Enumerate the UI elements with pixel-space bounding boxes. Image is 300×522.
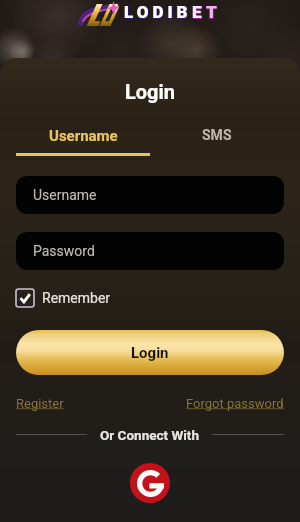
- staticText: Password: [33, 243, 95, 259]
- staticText: Username: [49, 127, 118, 143]
- staticText: Login: [131, 344, 169, 362]
- button[interactable]: SMS: [150, 127, 284, 143]
- button[interactable]: Remember: [16, 288, 111, 307]
- staticText: Username: [33, 187, 97, 203]
- button[interactable]: Forgot password: [186, 396, 284, 411]
- staticText: LODIB: [125, 2, 193, 22]
- staticText: SMS: [202, 127, 232, 143]
- button[interactable]: Sign in with Google: [130, 463, 170, 503]
- staticText: LODIB: [125, 3, 193, 23]
- staticText: ET: [192, 3, 221, 23]
- staticText: LODIB: [124, 2, 192, 22]
- staticText: ET: [193, 2, 222, 22]
- staticText: Or Connect With: [100, 427, 199, 441]
- staticText: LODIB: [124, 3, 192, 23]
- staticText: Remember: [42, 290, 111, 306]
- staticText: Login: [125, 80, 176, 103]
- button[interactable]: Register: [16, 396, 64, 411]
- staticText: E: [192, 2, 206, 22]
- staticText: T: [206, 2, 221, 22]
- staticText: ET: [193, 3, 222, 23]
- button[interactable]: Login: [16, 330, 284, 375]
- button[interactable]: Password: [16, 232, 284, 270]
- button[interactable]: Username: [16, 176, 284, 214]
- button[interactable]: Username: [16, 127, 150, 143]
